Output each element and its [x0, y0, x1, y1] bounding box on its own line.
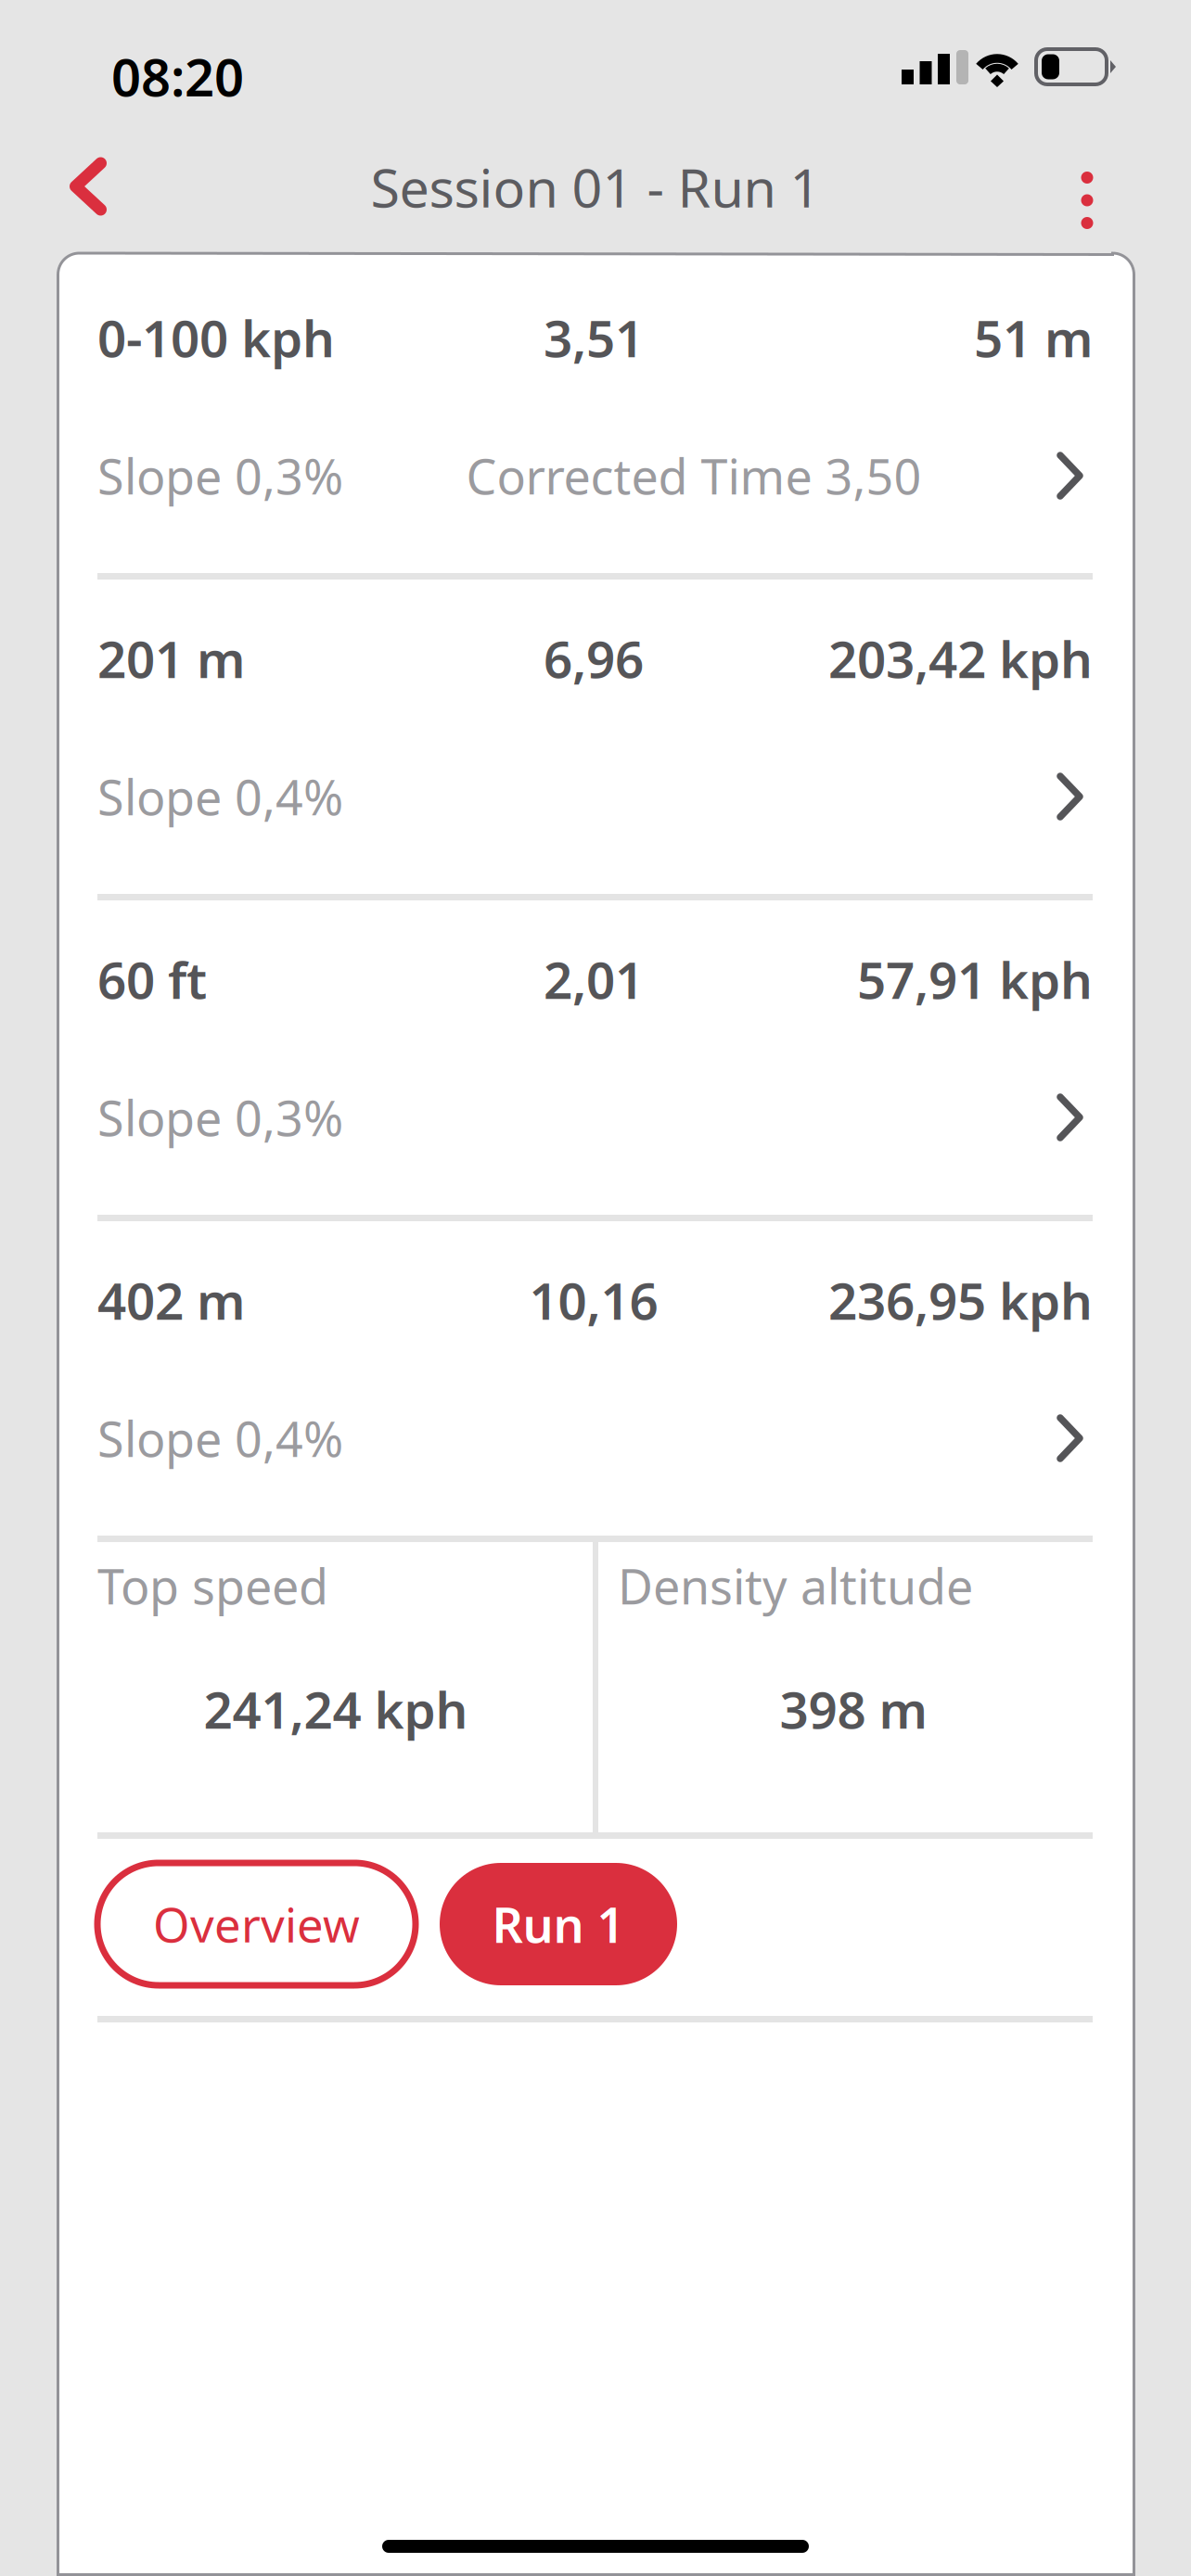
staticText: 3,51 — [544, 304, 644, 371]
staticText: 10,16 — [529, 1266, 658, 1334]
staticText: 60 ft — [97, 946, 207, 1013]
staticText: Overview — [153, 1893, 360, 1955]
staticText: 2,01 — [544, 946, 644, 1013]
staticText: 51 m — [974, 304, 1093, 371]
staticText: Session 01 - Run 1 — [371, 152, 820, 222]
button[interactable]: 402 m — [57, 1221, 1135, 1536]
button[interactable]: More options — [1043, 148, 1132, 252]
staticText: 201 m — [97, 625, 245, 692]
button[interactable]: Overview — [97, 1863, 416, 1985]
staticText: 241,24 kph — [204, 1675, 468, 1743]
staticText: Density altitude — [618, 1554, 973, 1618]
staticText: 0-100 kph — [97, 304, 335, 371]
staticText: Slope 0,4% — [97, 765, 343, 829]
staticText: 398 m — [780, 1675, 927, 1743]
staticText: 08:20 — [111, 42, 244, 111]
staticText: Corrected Time 3,50 — [466, 444, 922, 508]
button[interactable]: Back — [36, 134, 140, 238]
staticText: 57,91 kph — [857, 946, 1093, 1013]
staticText: 402 m — [97, 1266, 245, 1334]
staticText: Slope 0,3% — [97, 444, 343, 508]
button[interactable]: 201 m — [57, 580, 1135, 894]
button[interactable]: 60 ft — [57, 900, 1135, 1215]
staticText: Slope 0,4% — [97, 1406, 343, 1470]
staticText: Top speed — [97, 1554, 328, 1618]
button[interactable]: 0-100 kph — [57, 259, 1135, 573]
staticText: 236,95 kph — [828, 1266, 1093, 1334]
staticText: Slope 0,3% — [97, 1085, 343, 1149]
staticText: Run 1 — [492, 1892, 625, 1956]
button[interactable]: Run 1 — [440, 1863, 677, 1985]
staticText: 203,42 kph — [828, 625, 1093, 692]
staticText: 6,96 — [544, 625, 644, 692]
